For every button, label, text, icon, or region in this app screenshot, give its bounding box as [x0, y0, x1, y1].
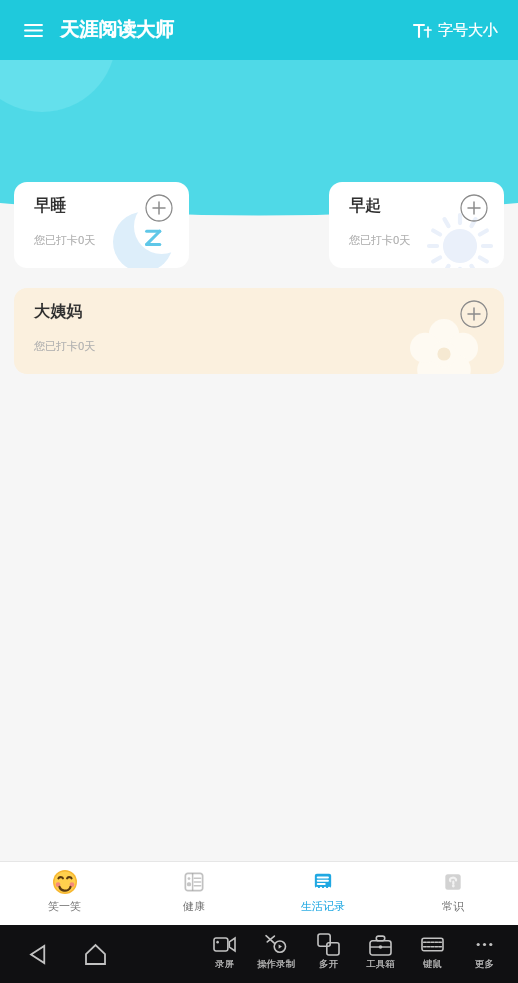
button[interactable]: Menu	[18, 15, 48, 45]
staticText: 录屏	[215, 958, 234, 970]
staticText: 生活记录	[301, 899, 345, 913]
button[interactable]: Home	[78, 937, 112, 971]
button[interactable]: 常识	[388, 862, 518, 925]
button[interactable]: 健康	[129, 862, 258, 925]
staticText: 操作录制	[257, 958, 295, 970]
button[interactable]: 录屏	[198, 925, 250, 983]
button[interactable]: 生活记录	[258, 862, 388, 925]
button[interactable]: Add check-in for 早起	[460, 194, 488, 222]
staticText: 笑一笑	[48, 899, 81, 913]
staticText: 健康	[183, 899, 205, 913]
button[interactable]: 键鼠	[406, 925, 458, 983]
button[interactable]: 笑一笑	[0, 862, 129, 925]
button[interactable]: 大姨妈	[14, 288, 504, 374]
staticText: 字号大小	[438, 21, 498, 40]
staticText: 更多	[475, 958, 494, 970]
staticText: 大姨妈	[34, 302, 82, 322]
button[interactable]: Add check-in for 早睡	[145, 194, 173, 222]
button[interactable]: Add check-in for 大姨妈	[460, 300, 488, 328]
button[interactable]: 工具箱	[354, 925, 406, 983]
staticText: 天涯阅读大师	[60, 18, 174, 42]
staticText: 您已打卡0天	[34, 338, 96, 353]
button[interactable]: Back	[22, 937, 56, 971]
button[interactable]: 早起	[329, 182, 504, 268]
staticText: 键鼠	[423, 958, 442, 970]
button[interactable]: 字号大小	[411, 17, 500, 44]
button[interactable]: 早睡	[14, 182, 189, 268]
button[interactable]: 操作录制	[250, 925, 302, 983]
staticText: 常识	[442, 899, 464, 913]
staticText: 您已打卡0天	[34, 232, 96, 247]
staticText: 早起	[349, 196, 381, 216]
button[interactable]: 多开	[302, 925, 354, 983]
button[interactable]: 更多	[458, 925, 510, 983]
staticText: 您已打卡0天	[349, 232, 411, 247]
staticText: 多开	[319, 958, 338, 970]
staticText: 工具箱	[366, 958, 395, 970]
staticText: 早睡	[34, 196, 66, 216]
